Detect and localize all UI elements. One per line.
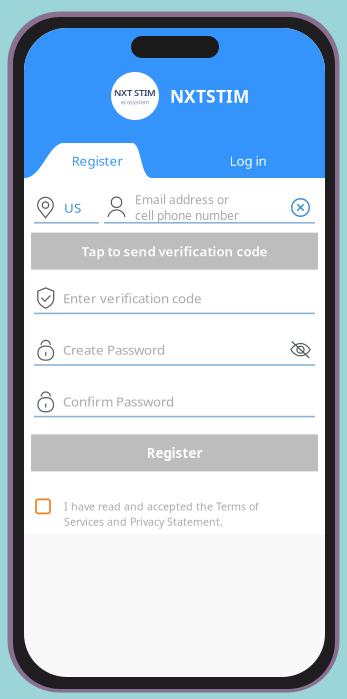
button[interactable]: Confirm Password: [34, 387, 315, 417]
button[interactable]: Tap to send verification code: [31, 233, 318, 270]
button[interactable]: Accept terms: [36, 499, 50, 513]
staticText: Register: [71, 152, 123, 169]
staticText: Services and Privacy Statement.: [64, 515, 223, 529]
staticText: US: [64, 199, 81, 216]
button[interactable]: Log in: [171, 143, 325, 178]
staticText: Log in: [229, 152, 266, 169]
staticText: Confirm Password: [63, 392, 174, 410]
staticText: NXTSTIM: [170, 84, 249, 107]
button[interactable]: Register: [24, 143, 171, 178]
staticText: Enter verification code: [63, 289, 202, 307]
staticText: I have read and accepted the Terms of: [64, 499, 259, 514]
button[interactable]: Email address or: [104, 193, 315, 224]
button[interactable]: Enter verification code: [34, 284, 315, 314]
button[interactable]: Register: [31, 434, 318, 471]
button[interactable]: Create Password: [34, 335, 315, 366]
staticText: Tap to send verification code: [81, 242, 267, 260]
staticText: NXT STIM: [114, 86, 156, 99]
staticText: Email address or: [135, 192, 229, 207]
staticText: ecosystem: [121, 99, 149, 106]
staticText: cell phone number: [135, 207, 239, 223]
button[interactable]: US: [34, 193, 99, 224]
staticText: Register: [146, 444, 202, 462]
staticText: Create Password: [63, 341, 165, 358]
